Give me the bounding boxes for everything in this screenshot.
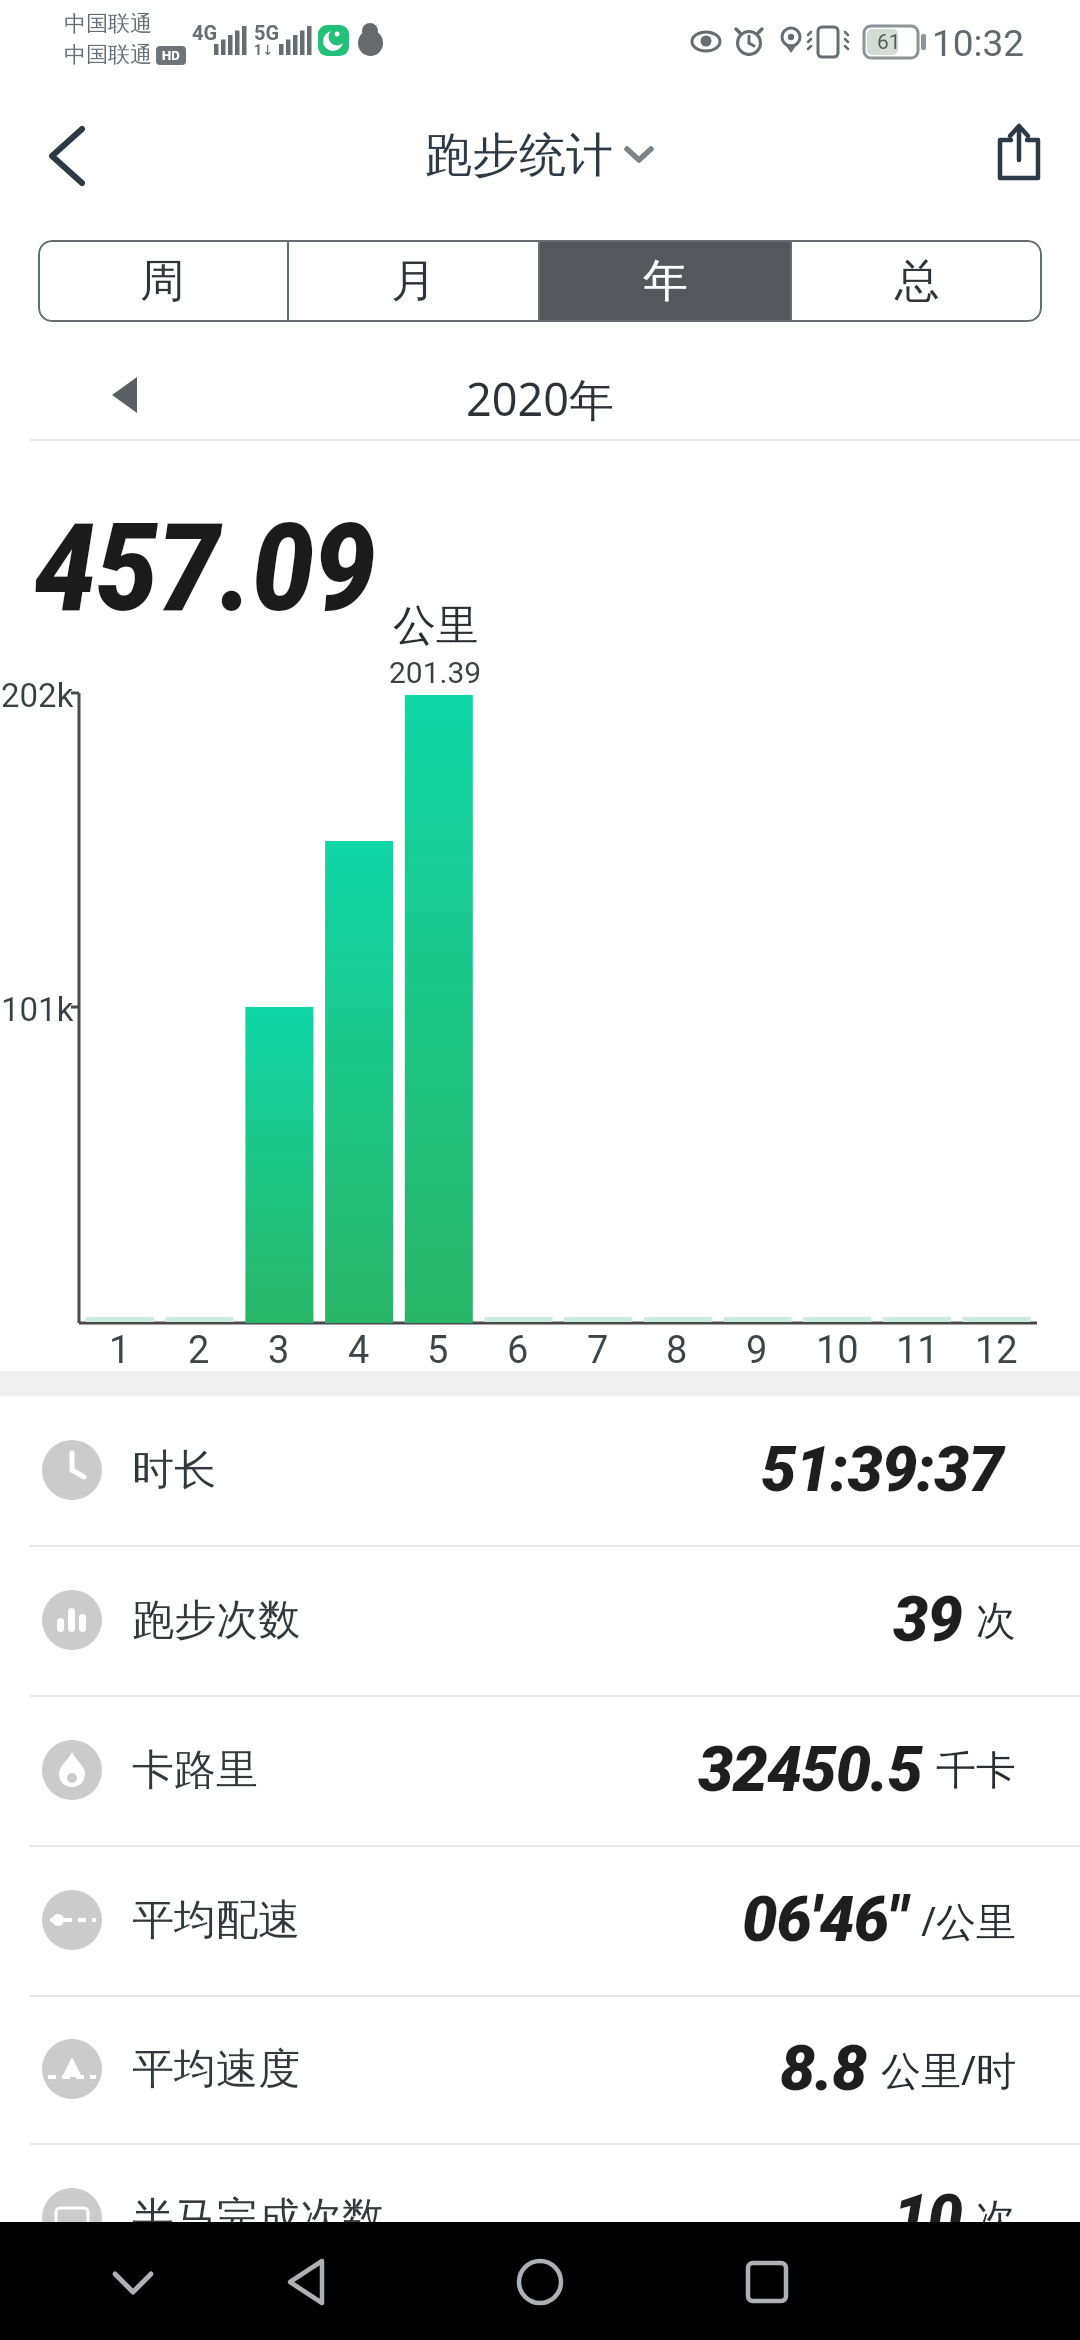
staticText: 年 (643, 253, 688, 310)
staticText: 中国联通 (64, 10, 152, 38)
staticText: 3 (268, 1328, 290, 1368)
staticText: 月 (391, 253, 436, 310)
staticText: 4 (348, 1328, 370, 1368)
staticText: 8.8 (780, 2032, 867, 2106)
staticText: 12 (975, 1328, 1018, 1368)
staticText: 32450.5 (698, 1733, 922, 1807)
staticText: 11 (896, 1328, 939, 1368)
staticText: 8 (666, 1328, 688, 1368)
staticText: 公里 (393, 599, 479, 647)
staticText: 周 (140, 253, 185, 310)
staticText: 61 (877, 30, 901, 55)
button[interactable]: 周 (38, 240, 287, 322)
button[interactable] (729, 2247, 805, 2317)
staticText: 总 (895, 253, 940, 310)
button[interactable] (985, 118, 1055, 192)
staticText: 201.39 (389, 655, 482, 690)
staticText: 卡路里 (132, 1744, 258, 1797)
staticText: 202k (1, 676, 74, 712)
staticText: 06'46" (742, 1883, 907, 1957)
staticText: /公里 (921, 1893, 1016, 1948)
staticText: 次 (976, 1595, 1016, 1645)
staticText: 中国联通 (64, 41, 152, 69)
staticText: HD (162, 48, 180, 63)
staticText: 39 (893, 1583, 962, 1657)
staticText: 51:39:37 (761, 1433, 1003, 1507)
staticText: 跑步次数 (132, 1594, 300, 1647)
staticText: 5 (427, 1328, 449, 1368)
staticText: 平均速度 (132, 2043, 300, 2096)
button[interactable] (270, 2247, 346, 2317)
staticText: 跑步统计 (425, 126, 613, 185)
button[interactable] (95, 2252, 171, 2312)
staticText: 6 (507, 1328, 529, 1368)
staticText: 9 (746, 1328, 768, 1368)
button[interactable]: 总 (792, 240, 1042, 322)
staticText: 1↓ (254, 42, 274, 58)
button[interactable]: 月 (289, 240, 538, 322)
staticText: 时长 (132, 1444, 216, 1497)
staticText: 1 (109, 1328, 131, 1368)
staticText: 10:32 (932, 22, 1025, 62)
staticText: 半马完成次数 (132, 2192, 384, 2245)
staticText: 10 (816, 1328, 859, 1368)
staticText: 10 (893, 2181, 962, 2255)
button[interactable] (502, 2247, 578, 2317)
button[interactable] (30, 120, 110, 192)
staticText: 2020年 (466, 368, 614, 424)
staticText: 4G (192, 21, 218, 43)
staticText: 7 (587, 1328, 609, 1368)
staticText: 457.09 (34, 498, 376, 620)
staticText: 101k (1, 990, 74, 1026)
staticText: 2 (188, 1328, 210, 1368)
button[interactable]: 跑步统计 (425, 126, 655, 185)
button[interactable] (100, 368, 160, 424)
staticText: 5G (254, 21, 280, 43)
button[interactable]: 年 (540, 240, 790, 322)
staticText: 平均配速 (132, 1894, 300, 1947)
staticText: 公里/时 (881, 2042, 1016, 2097)
staticText: 次 (976, 2193, 1016, 2243)
staticText: 千卡 (936, 1745, 1016, 1795)
